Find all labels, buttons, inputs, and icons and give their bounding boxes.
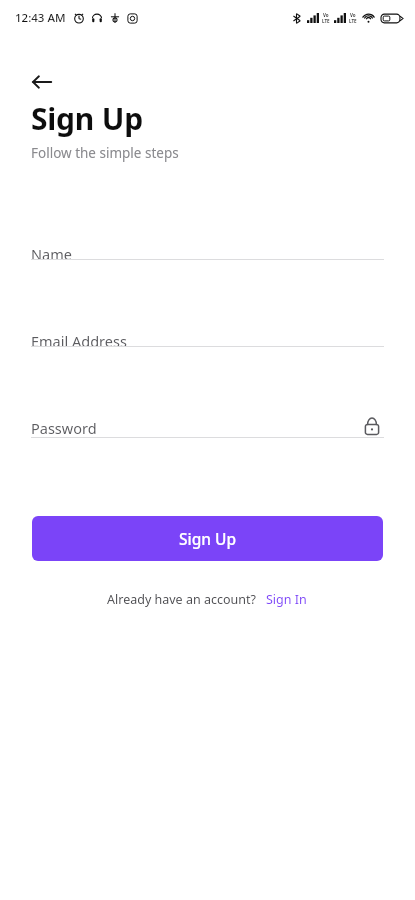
staticText: Sign Up <box>31 98 143 139</box>
staticText: Email Address <box>31 331 127 351</box>
button[interactable]: Email Address <box>0 327 415 379</box>
staticText: Sign Up <box>179 528 237 549</box>
staticText: Sign In <box>266 591 307 608</box>
staticText: Password <box>31 418 97 438</box>
other: Toggle password visibility <box>360 414 384 438</box>
button[interactable]: Sign In <box>265 589 308 610</box>
button[interactable]: Sign Up <box>32 516 383 561</box>
button[interactable]: Name <box>0 240 415 292</box>
staticText: LTE <box>322 18 330 24</box>
button[interactable]: Back <box>24 64 60 100</box>
staticText: 12:43 AM <box>15 10 66 26</box>
staticText: Vo <box>323 12 329 18</box>
staticText: Already have an account? <box>107 591 256 608</box>
staticText: LTE <box>349 18 357 24</box>
button[interactable]: Password <box>0 414 415 466</box>
staticText: Name <box>31 244 72 264</box>
staticText: Follow the simple steps <box>31 144 179 162</box>
staticText: Vo <box>350 12 356 18</box>
